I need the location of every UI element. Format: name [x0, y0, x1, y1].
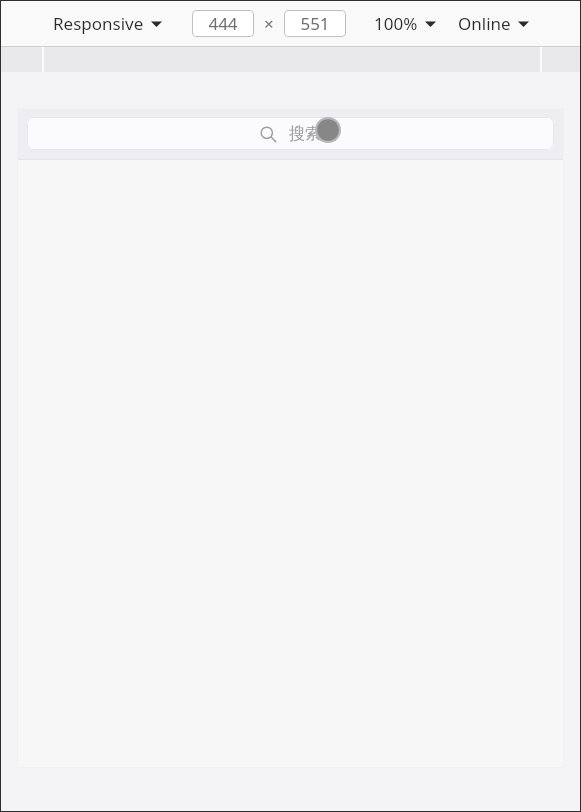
button[interactable]: 551 — [284, 10, 346, 37]
staticText: 100% — [374, 12, 418, 35]
staticText: 444 — [208, 12, 238, 35]
staticText: 搜索 — [289, 124, 321, 144]
staticText: Responsive — [53, 12, 144, 35]
button[interactable]: 444 — [192, 10, 254, 37]
button[interactable]: 搜索 — [27, 117, 554, 150]
button[interactable]: 100% — [372, 10, 438, 37]
staticText: 551 — [300, 12, 330, 35]
other: Pointer — [315, 117, 341, 143]
staticText: × — [264, 12, 274, 35]
button[interactable]: Online — [456, 10, 531, 37]
button[interactable]: Responsive — [51, 10, 164, 37]
staticText: Online — [458, 12, 511, 35]
